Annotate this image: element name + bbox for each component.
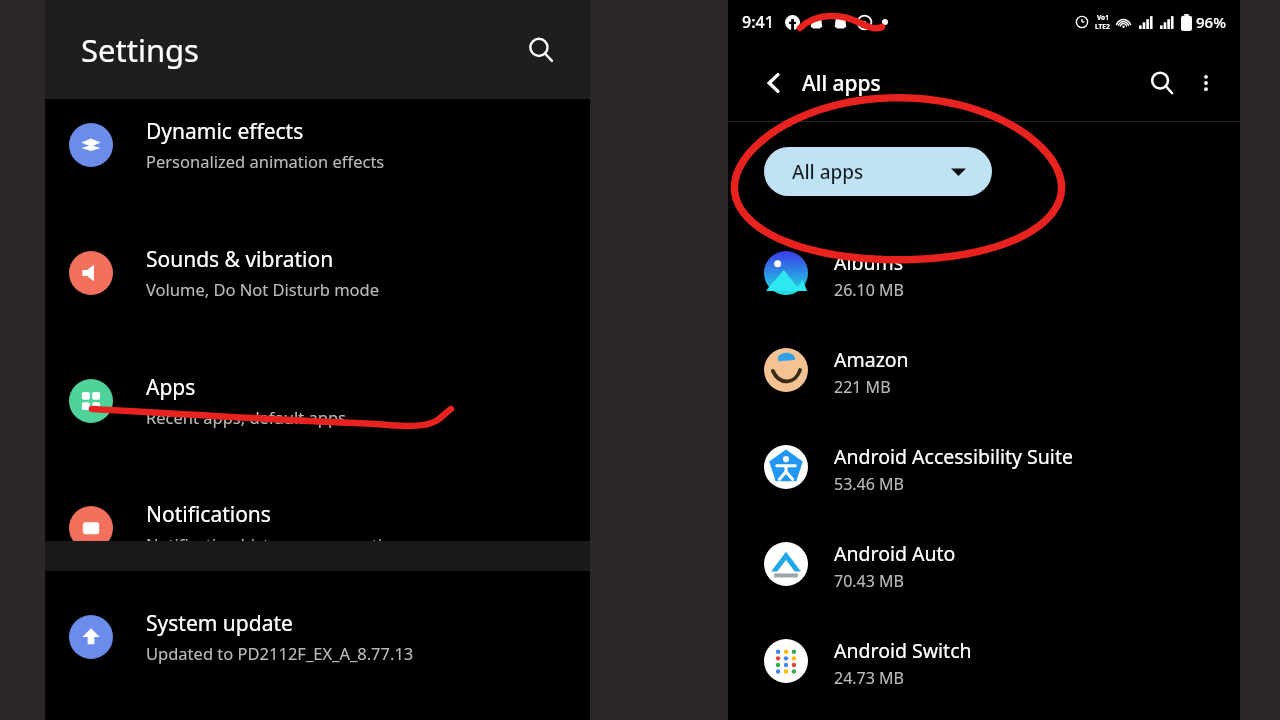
button[interactable]: Android Auto [728, 540, 1240, 626]
staticText: LTE2 [1095, 22, 1110, 31]
button[interactable]: Android Accessibility Suite [728, 443, 1240, 529]
staticText: Recent apps, default apps [146, 406, 346, 428]
staticText: Notifications [146, 500, 271, 529]
staticText: All apps [792, 159, 864, 185]
staticText: 26.10 MB [834, 279, 904, 301]
staticText: Android Switch [834, 637, 972, 664]
button[interactable]: All apps [764, 147, 992, 196]
staticText: 24.73 MB [834, 667, 904, 689]
staticText: Volume, Do Not Disturb mode [146, 278, 380, 300]
staticText: Settings [81, 29, 199, 71]
staticText: 70.43 MB [834, 570, 904, 592]
button[interactable]: Apps [45, 373, 590, 481]
staticText: Apps [146, 373, 196, 402]
staticText: System update [146, 609, 293, 638]
button[interactable]: System update [45, 609, 590, 717]
button[interactable]: Albums [728, 249, 1240, 335]
staticText: Amazon [834, 346, 909, 373]
staticText: Android Auto [834, 540, 956, 567]
staticText: Personalized animation effects [146, 150, 385, 172]
staticText: 9:41 [742, 11, 774, 33]
button[interactable]: Search settings [518, 27, 564, 73]
button[interactable]: Sounds & vibration [45, 245, 590, 353]
staticText: Sounds & vibration [146, 245, 334, 274]
button[interactable]: Notifications [45, 500, 590, 608]
staticText: Vo1 [1097, 13, 1109, 22]
button[interactable]: More options [1184, 61, 1228, 105]
staticText: Android Accessibility Suite [834, 443, 1073, 470]
button[interactable]: Android Switch [728, 637, 1240, 720]
button[interactable]: Search apps [1140, 61, 1184, 105]
staticText: 53.46 MB [834, 473, 904, 495]
staticText: Albums [834, 249, 904, 276]
staticText: Notification history, conversations [146, 533, 411, 555]
button[interactable]: Back [752, 61, 796, 105]
button[interactable]: Dynamic effects [45, 117, 590, 225]
staticText: 96% [1196, 12, 1226, 32]
button[interactable]: Amazon [728, 346, 1240, 432]
staticText: Updated to PD2112F_EX_A_8.77.13 [146, 642, 414, 664]
staticText: Dynamic effects [146, 117, 304, 146]
staticText: All apps [802, 69, 881, 98]
staticText: 221 MB [834, 376, 891, 398]
